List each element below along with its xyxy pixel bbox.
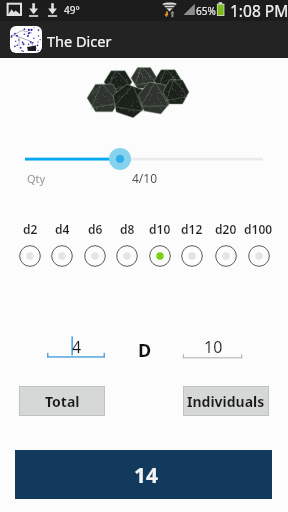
staticText: d6: [88, 221, 103, 237]
staticText: D: [138, 338, 152, 363]
staticText: d10: [149, 221, 171, 237]
staticText: d100: [244, 221, 273, 237]
button[interactable]: d20: [209, 221, 243, 270]
staticText: Qty: [27, 171, 46, 186]
button[interactable]: d10: [143, 221, 177, 270]
staticText: The Dicer: [47, 31, 112, 51]
staticText: 49°: [64, 3, 80, 17]
button[interactable]: Individuals: [183, 386, 269, 416]
staticText: d12: [181, 221, 203, 237]
button[interactable]: Total: [19, 386, 105, 416]
button[interactable]: d6: [78, 221, 112, 270]
staticText: 1:08 PM: [230, 0, 288, 21]
button[interactable]: d100: [241, 221, 275, 270]
staticText: 4: [72, 336, 82, 358]
button[interactable]: d12: [175, 221, 209, 270]
button[interactable]: d8: [110, 221, 144, 270]
staticText: Total: [45, 392, 80, 411]
staticText: d20: [215, 221, 237, 237]
staticText: 10: [204, 336, 223, 358]
staticText: d8: [120, 221, 135, 237]
staticText: 4/10: [132, 170, 158, 186]
button[interactable]: 14: [15, 450, 272, 499]
staticText: d4: [55, 221, 70, 237]
button[interactable]: d2: [13, 221, 47, 270]
button[interactable]: d4: [45, 221, 79, 270]
staticText: 65%: [196, 4, 216, 18]
staticText: 14: [134, 461, 159, 490]
staticText: Individuals: [187, 392, 265, 411]
staticText: d2: [23, 221, 38, 237]
